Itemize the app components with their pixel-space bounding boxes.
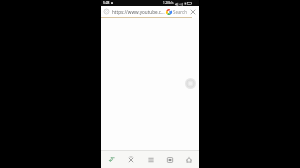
button[interactable]: Stop loading — [122, 151, 139, 168]
button[interactable]: Menu — [142, 151, 159, 168]
staticText: https://www.youtube.com — [112, 9, 165, 15]
button[interactable]: https://www.youtube.com — [112, 6, 165, 17]
staticText: 1.2Kb/s — [163, 1, 174, 5]
button[interactable]: Tabs — [161, 151, 178, 168]
button[interactable]: Page info — [103, 8, 110, 15]
button[interactable]: Home — [180, 151, 197, 168]
staticText: 5:28 — [103, 1, 110, 5]
button[interactable]: Search — [166, 6, 187, 17]
button[interactable]: Back — [103, 151, 120, 168]
button[interactable]: Close — [189, 8, 197, 16]
staticText: Search — [173, 9, 187, 15]
